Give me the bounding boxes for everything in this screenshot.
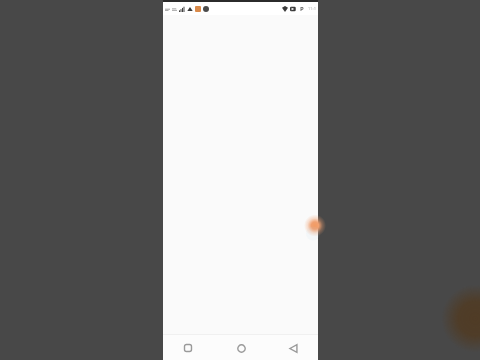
staticText: P — [300, 5, 304, 12]
button[interactable]: Home — [230, 337, 252, 359]
staticText: 11:1 — [308, 6, 316, 11]
button[interactable]: Back — [282, 337, 304, 359]
button[interactable]: Recent apps — [177, 337, 199, 359]
